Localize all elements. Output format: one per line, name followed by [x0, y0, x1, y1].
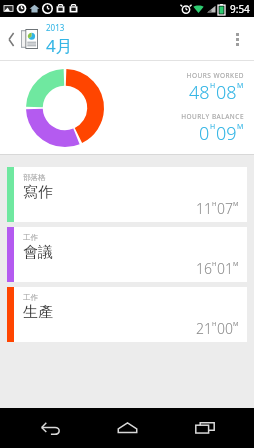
- button[interactable]: 部落格: [7, 167, 247, 222]
- staticText: M: [237, 81, 244, 91]
- staticText: 部落格: [23, 173, 46, 182]
- staticText: 4月: [46, 34, 73, 57]
- staticText: HOURS WORKED: [186, 71, 244, 80]
- button[interactable]: 工作: [7, 287, 247, 342]
- staticText: 2013: [46, 22, 65, 33]
- staticText: H: [212, 320, 217, 328]
- staticText: H: [212, 260, 217, 268]
- staticText: HOURLY BALANCE: [181, 112, 244, 121]
- staticText: 09: [216, 121, 237, 146]
- staticText: 07: [217, 199, 233, 218]
- staticText: H: [212, 200, 217, 208]
- staticText: 00: [217, 319, 233, 338]
- staticText: 0: [199, 121, 210, 146]
- staticText: 08: [216, 80, 237, 105]
- staticText: M: [233, 260, 239, 268]
- staticText: 工作: [23, 293, 38, 302]
- staticText: 11: [196, 199, 212, 218]
- staticText: 16: [196, 259, 212, 278]
- button[interactable]: Recent apps: [177, 408, 233, 448]
- staticText: 寫作: [23, 183, 53, 202]
- staticText: H: [210, 81, 216, 91]
- staticText: 9:54: [230, 2, 250, 16]
- staticText: 01: [217, 259, 233, 278]
- button[interactable]: 工作: [7, 227, 247, 282]
- button[interactable]: Back: [5, 22, 18, 56]
- staticText: H: [210, 122, 216, 132]
- staticText: M: [233, 320, 239, 328]
- button[interactable]: Home: [99, 408, 155, 448]
- button[interactable]: Back: [22, 408, 78, 448]
- staticText: 生產: [23, 303, 53, 322]
- staticText: M: [237, 122, 244, 132]
- staticText: 會議: [23, 243, 53, 262]
- staticText: 48: [189, 80, 210, 105]
- staticText: 21: [196, 319, 212, 338]
- staticText: M: [233, 200, 239, 208]
- staticText: 工作: [23, 233, 38, 242]
- button[interactable]: More options: [226, 19, 248, 59]
